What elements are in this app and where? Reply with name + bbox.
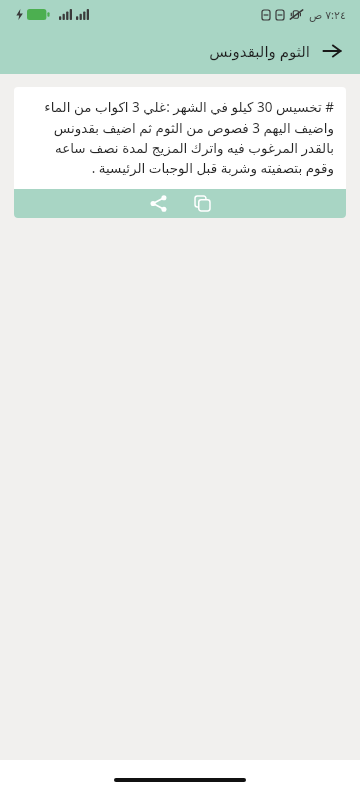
staticText: الثوم والبقدونس xyxy=(209,41,310,61)
button[interactable]: Share xyxy=(141,189,175,218)
button[interactable]: Back xyxy=(312,31,352,71)
staticText: # تخسيس 30 كيلو في الشهر :غلي 3 اكواب من… xyxy=(26,98,334,177)
staticText: ٧:٢٤ ص xyxy=(309,7,346,22)
button[interactable]: Copy xyxy=(185,189,219,218)
